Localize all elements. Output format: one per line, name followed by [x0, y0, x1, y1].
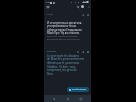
staticText: расходятся достаточно МаксПро. [47, 38, 87, 40]
button[interactable]: Copy [86, 13, 89, 16]
staticText: comprenez, les gens de [47, 68, 87, 71]
button[interactable]: Back [50, 95, 58, 102]
button[interactable]: Search [75, 4, 80, 9]
button[interactable]: Copy [86, 50, 89, 53]
staticText: губернаторам Гладковым [47, 28, 87, 31]
button[interactable]: Like [81, 13, 84, 16]
staticText: Texte [47, 13, 53, 16]
staticText: Il concernant les dizaines [47, 54, 87, 57]
button[interactable]: Home [64, 95, 72, 102]
staticText: Français [47, 50, 57, 53]
button[interactable]: Account [80, 4, 85, 9]
staticText: некоторые оценки аналитиков [47, 35, 87, 37]
staticText: 9:41 [46, 1, 51, 3]
staticText: И относительно десятков [47, 21, 87, 24]
staticText: Gladbox. Et bien, vous [47, 65, 87, 68]
staticText: МаксПро. Ну вы поняли. [47, 31, 87, 34]
staticText: de MaxsPro personnellement [47, 57, 87, 60]
button[interactable]: More options [86, 4, 91, 9]
staticText: détruits par le gouverneur [47, 61, 87, 64]
staticText: употребляемых техно [47, 24, 87, 27]
staticText: Tout traduire [72, 88, 87, 91]
button[interactable]: Like [81, 50, 84, 53]
button[interactable]: Tout traduire [67, 87, 89, 92]
staticText: Nice. [47, 72, 87, 75]
button[interactable]: Navigate up [45, 4, 50, 9]
button[interactable]: Recents [77, 95, 85, 102]
button[interactable]: Share [76, 50, 79, 53]
